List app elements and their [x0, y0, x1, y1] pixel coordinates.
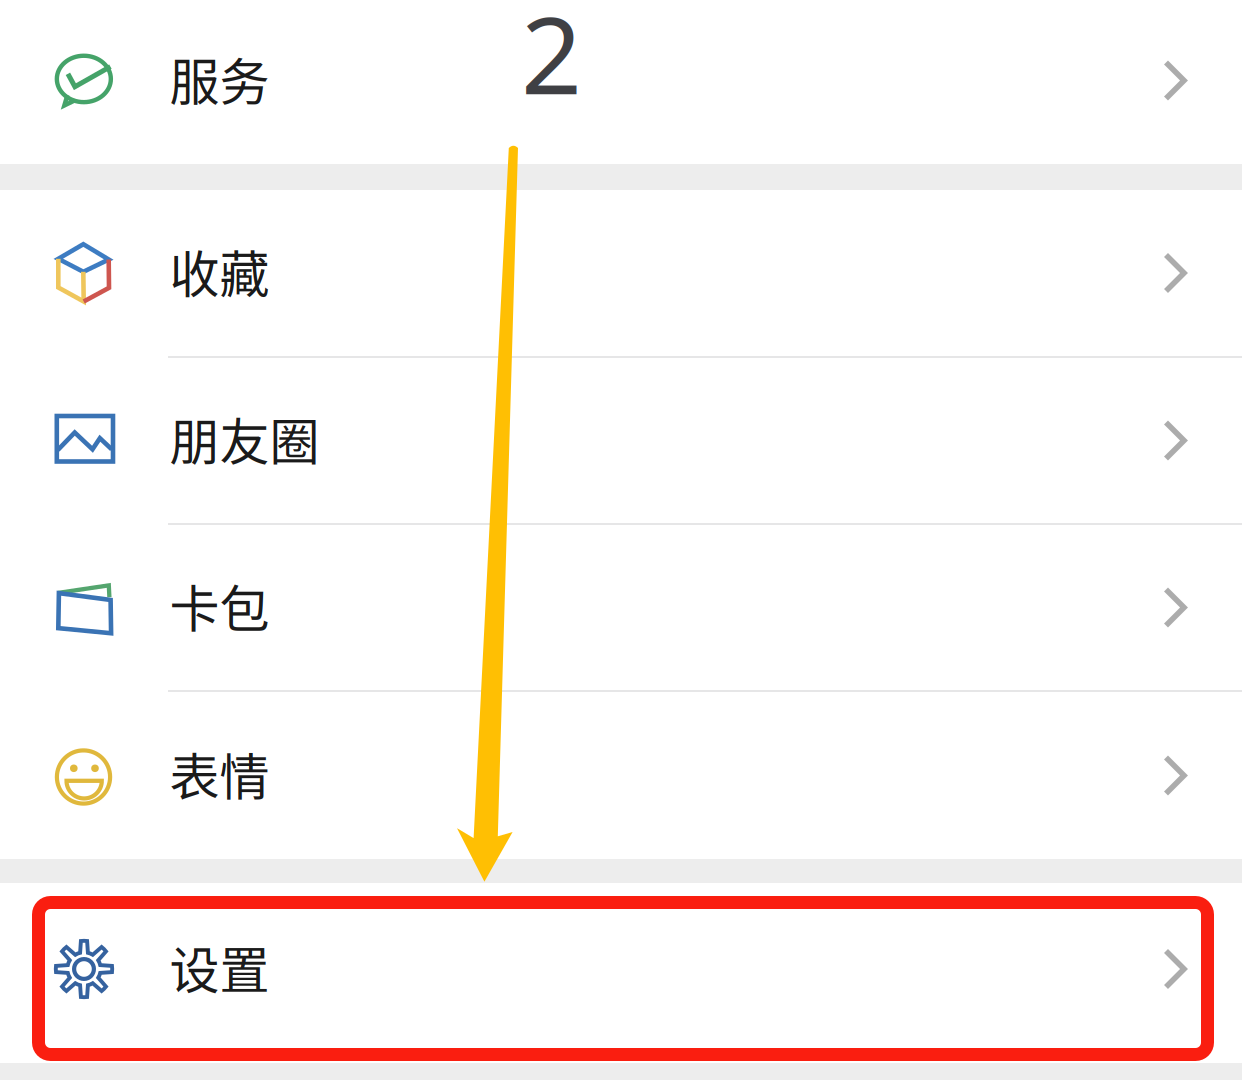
button[interactable]: 服务 [0, 0, 1242, 164]
button[interactable]: 卡包 [0, 525, 1242, 690]
staticText: 朋友圈 [169, 402, 319, 475]
staticText: 2 [521, 0, 582, 124]
staticText: 表情 [169, 737, 269, 810]
staticText: 卡包 [169, 569, 269, 642]
button[interactable]: 朋友圈 [0, 358, 1242, 523]
button[interactable]: 收藏 [0, 190, 1242, 356]
button[interactable]: 设置 [0, 883, 1242, 1063]
staticText: 设置 [169, 931, 269, 1003]
button[interactable]: 表情 [0, 692, 1242, 859]
staticText: 收藏 [169, 235, 269, 307]
staticText: 服务 [169, 42, 269, 115]
